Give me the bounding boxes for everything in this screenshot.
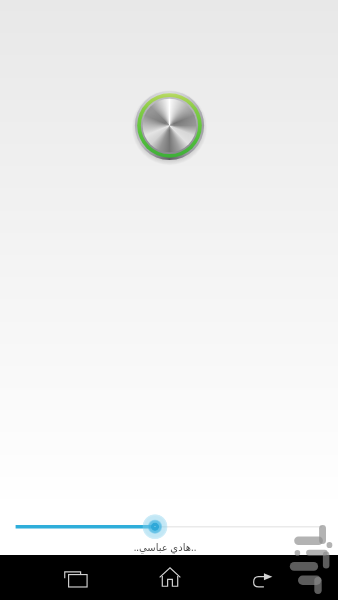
button[interactable] (0, 510, 338, 543)
button[interactable]: Power knob (127, 83, 212, 168)
button[interactable]: Home (141, 556, 199, 597)
button[interactable]: Recent apps (47, 559, 105, 600)
staticText: ..هادي عباسي.. (0, 540, 334, 554)
button[interactable]: Back (234, 560, 292, 600)
